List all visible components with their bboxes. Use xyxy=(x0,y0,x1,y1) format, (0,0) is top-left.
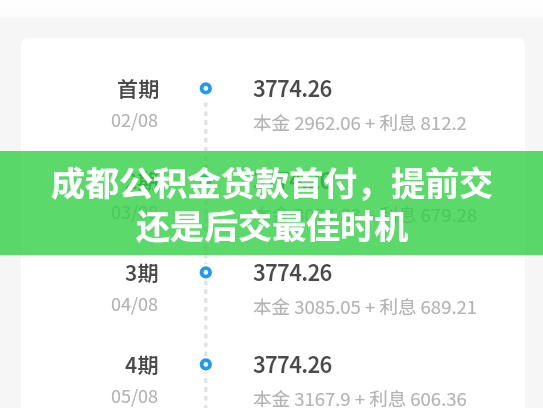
staticText: 本金 2962.06 + 利息 812.2 xyxy=(253,109,467,136)
staticText: 02/08 xyxy=(111,106,159,132)
staticText: 本金 3085.05 + 利息 689.21 xyxy=(253,293,478,320)
staticText: 2期 xyxy=(125,165,159,195)
staticText: 3774.26 xyxy=(253,347,332,379)
staticText: 04/08 xyxy=(111,290,159,316)
staticText: 3期 xyxy=(125,257,159,287)
staticText: 本金 3167.9 + 利息 606.36 xyxy=(253,385,467,408)
staticText: 03/08 xyxy=(111,198,159,224)
button[interactable]: 3期 xyxy=(21,226,525,318)
staticText: 首期 xyxy=(117,73,159,103)
staticText: 05/08 xyxy=(111,382,159,408)
button[interactable]: 成都公积金贷款首付，提前交 还是后交最佳时机 xyxy=(0,151,543,255)
staticText: 3774.26 xyxy=(253,71,332,103)
button[interactable]: 2期 xyxy=(21,134,525,226)
button[interactable]: 4期 xyxy=(21,318,525,408)
staticText: 3774.26 xyxy=(253,255,332,287)
staticText: 4期 xyxy=(125,349,159,379)
staticText: 本金 3074.83 + 利息 679.28 xyxy=(253,201,478,228)
staticText: 成都公积金贷款首付，提前交 还是后交最佳时机 xyxy=(51,157,493,249)
button[interactable]: 首期 xyxy=(21,42,525,134)
staticText: 3774.26 xyxy=(253,163,332,195)
